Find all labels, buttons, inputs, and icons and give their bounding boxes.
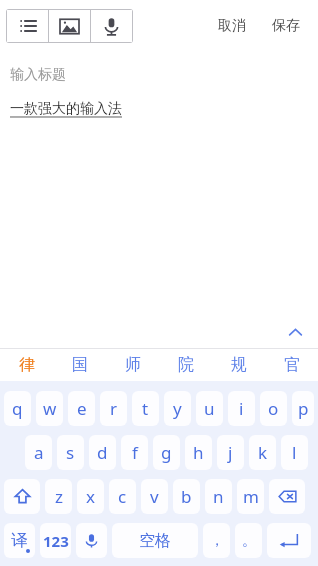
staticText: e	[77, 397, 87, 420]
button[interactable]: Checklist	[7, 10, 48, 42]
staticText: f	[132, 441, 138, 464]
button[interactable]: q	[4, 391, 31, 426]
button[interactable]: a	[25, 435, 52, 470]
staticText: 译	[11, 530, 28, 551]
staticText: a	[34, 441, 44, 464]
button[interactable]: Enter	[267, 523, 311, 558]
button[interactable]: u	[196, 391, 223, 426]
button[interactable]: 取消	[212, 11, 252, 41]
button[interactable]: Collapse keyboard	[282, 319, 308, 345]
staticText: 院	[178, 355, 194, 375]
staticText: u	[204, 397, 215, 420]
staticText: r	[110, 397, 118, 420]
button[interactable]: e	[68, 391, 95, 426]
button[interactable]: c	[109, 479, 136, 514]
button[interactable]: 保存	[266, 11, 306, 41]
staticText: 师	[125, 355, 141, 375]
staticText: w	[43, 397, 57, 420]
button[interactable]: i	[228, 391, 255, 426]
button[interactable]: Voice input	[91, 10, 132, 42]
button[interactable]: d	[89, 435, 116, 470]
staticText: l	[292, 441, 297, 464]
button[interactable]: Translate	[4, 523, 35, 558]
staticText: m	[243, 485, 259, 508]
button[interactable]: b	[173, 479, 200, 514]
staticText: h	[193, 441, 204, 464]
button[interactable]: 规	[212, 349, 265, 381]
button[interactable]: h	[185, 435, 212, 470]
button[interactable]: 院	[159, 349, 212, 381]
staticText: 输入标题	[10, 66, 66, 84]
button[interactable]: k	[249, 435, 276, 470]
staticText: n	[213, 485, 224, 508]
staticText: 空格	[139, 531, 171, 551]
staticText: 规	[231, 355, 247, 375]
button[interactable]: w	[36, 391, 63, 426]
staticText: k	[258, 441, 268, 464]
button[interactable]: j	[217, 435, 244, 470]
staticText: q	[12, 397, 23, 420]
button[interactable]: 空格	[112, 523, 198, 558]
button[interactable]: 师	[106, 349, 159, 381]
button[interactable]: l	[281, 435, 308, 470]
staticText: p	[298, 397, 309, 420]
button[interactable]: 国	[53, 349, 106, 381]
button[interactable]: f	[121, 435, 148, 470]
button[interactable]: x	[77, 479, 104, 514]
button[interactable]: y	[164, 391, 191, 426]
button[interactable]: t	[132, 391, 159, 426]
button[interactable]: v	[141, 479, 168, 514]
staticText: 保存	[272, 17, 300, 35]
button[interactable]: g	[153, 435, 180, 470]
staticText: 。	[242, 532, 256, 550]
button[interactable]: 官	[265, 349, 318, 381]
staticText: 官	[284, 355, 300, 375]
button[interactable]: Shift	[4, 479, 40, 514]
staticText: x	[86, 485, 95, 508]
staticText: v	[150, 485, 159, 508]
staticText: ，	[210, 532, 224, 550]
staticText: g	[161, 441, 172, 464]
button[interactable]: r	[100, 391, 127, 426]
button[interactable]: p	[292, 391, 314, 426]
button[interactable]: Insert image	[49, 10, 90, 42]
button[interactable]: 123	[40, 523, 71, 558]
staticText: s	[66, 441, 75, 464]
button[interactable]: 。	[235, 523, 262, 558]
staticText: 一款强大的输入法	[10, 100, 122, 118]
staticText: c	[118, 485, 127, 508]
button[interactable]: 律	[0, 349, 53, 381]
button[interactable]: Backspace	[269, 479, 305, 514]
button[interactable]: ，	[203, 523, 230, 558]
button[interactable]: Voice	[76, 523, 107, 558]
staticText: y	[173, 397, 182, 420]
button[interactable]: m	[237, 479, 264, 514]
staticText: j	[228, 441, 233, 464]
staticText: 国	[72, 355, 88, 375]
staticText: i	[239, 397, 244, 420]
staticText: b	[181, 485, 192, 508]
staticText: z	[55, 485, 63, 508]
button[interactable]: o	[260, 391, 287, 426]
button[interactable]: s	[57, 435, 84, 470]
staticText: 取消	[218, 17, 246, 35]
button[interactable]: n	[205, 479, 232, 514]
staticText: d	[97, 441, 108, 464]
button[interactable]: z	[45, 479, 72, 514]
staticText: 123	[43, 531, 69, 551]
staticText: o	[268, 397, 279, 420]
staticText: t	[142, 397, 149, 420]
staticText: 律	[19, 355, 35, 375]
